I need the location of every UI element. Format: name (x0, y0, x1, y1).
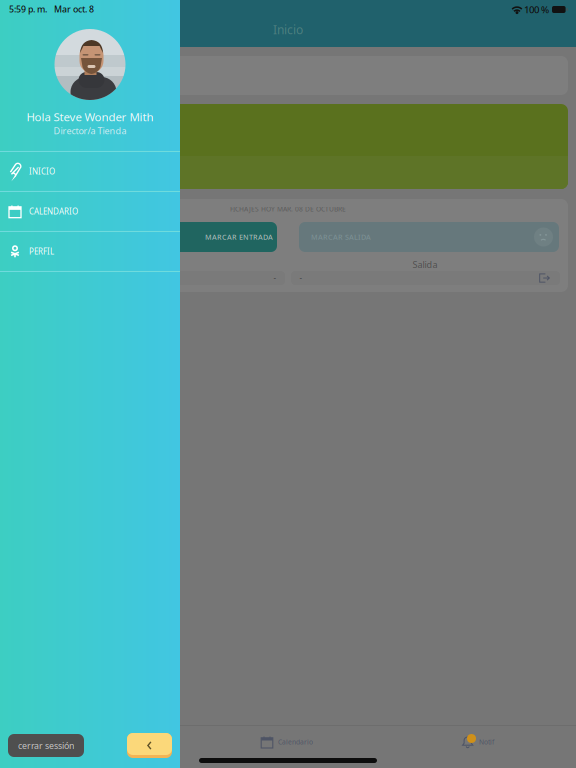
button[interactable]: Atrás (127, 733, 172, 758)
button[interactable]: Notif (378, 730, 576, 754)
staticText: 100 % (524, 3, 549, 16)
staticText: Salida (412, 258, 437, 271)
button[interactable]: CALENDARIO (0, 191, 180, 231)
button[interactable]: PERFIL (0, 231, 180, 271)
staticText: Inicio (273, 21, 303, 38)
staticText: Notif (479, 737, 494, 747)
staticText: PERFIL (29, 246, 54, 257)
staticText: MARCAR SALIDA (311, 232, 371, 242)
staticText: cerrar sessión (18, 739, 74, 751)
button[interactable]: MARCAR ENTRADA (161, 222, 277, 252)
staticText: INICIO (29, 166, 55, 177)
staticText: 5:59 p. m. (9, 3, 47, 15)
button[interactable]: Calendario (180, 730, 378, 754)
staticText: - (273, 273, 276, 283)
staticText: Hola Steve Wonder Mith (26, 109, 153, 125)
staticText: MARCAR ENTRADA (205, 232, 273, 242)
staticText: Director/a Tienda (53, 125, 126, 137)
staticText: - (299, 273, 302, 283)
staticText: Mar oct. 8 (54, 3, 94, 15)
button[interactable]: INICIO (0, 151, 180, 191)
staticText: CALENDARIO (29, 206, 78, 217)
button[interactable]: cerrar sessión (8, 734, 84, 757)
staticText: Calendario (278, 737, 313, 747)
staticText: FICHAJES HOY MAR. 08 DE OCTUBRE (230, 204, 346, 214)
